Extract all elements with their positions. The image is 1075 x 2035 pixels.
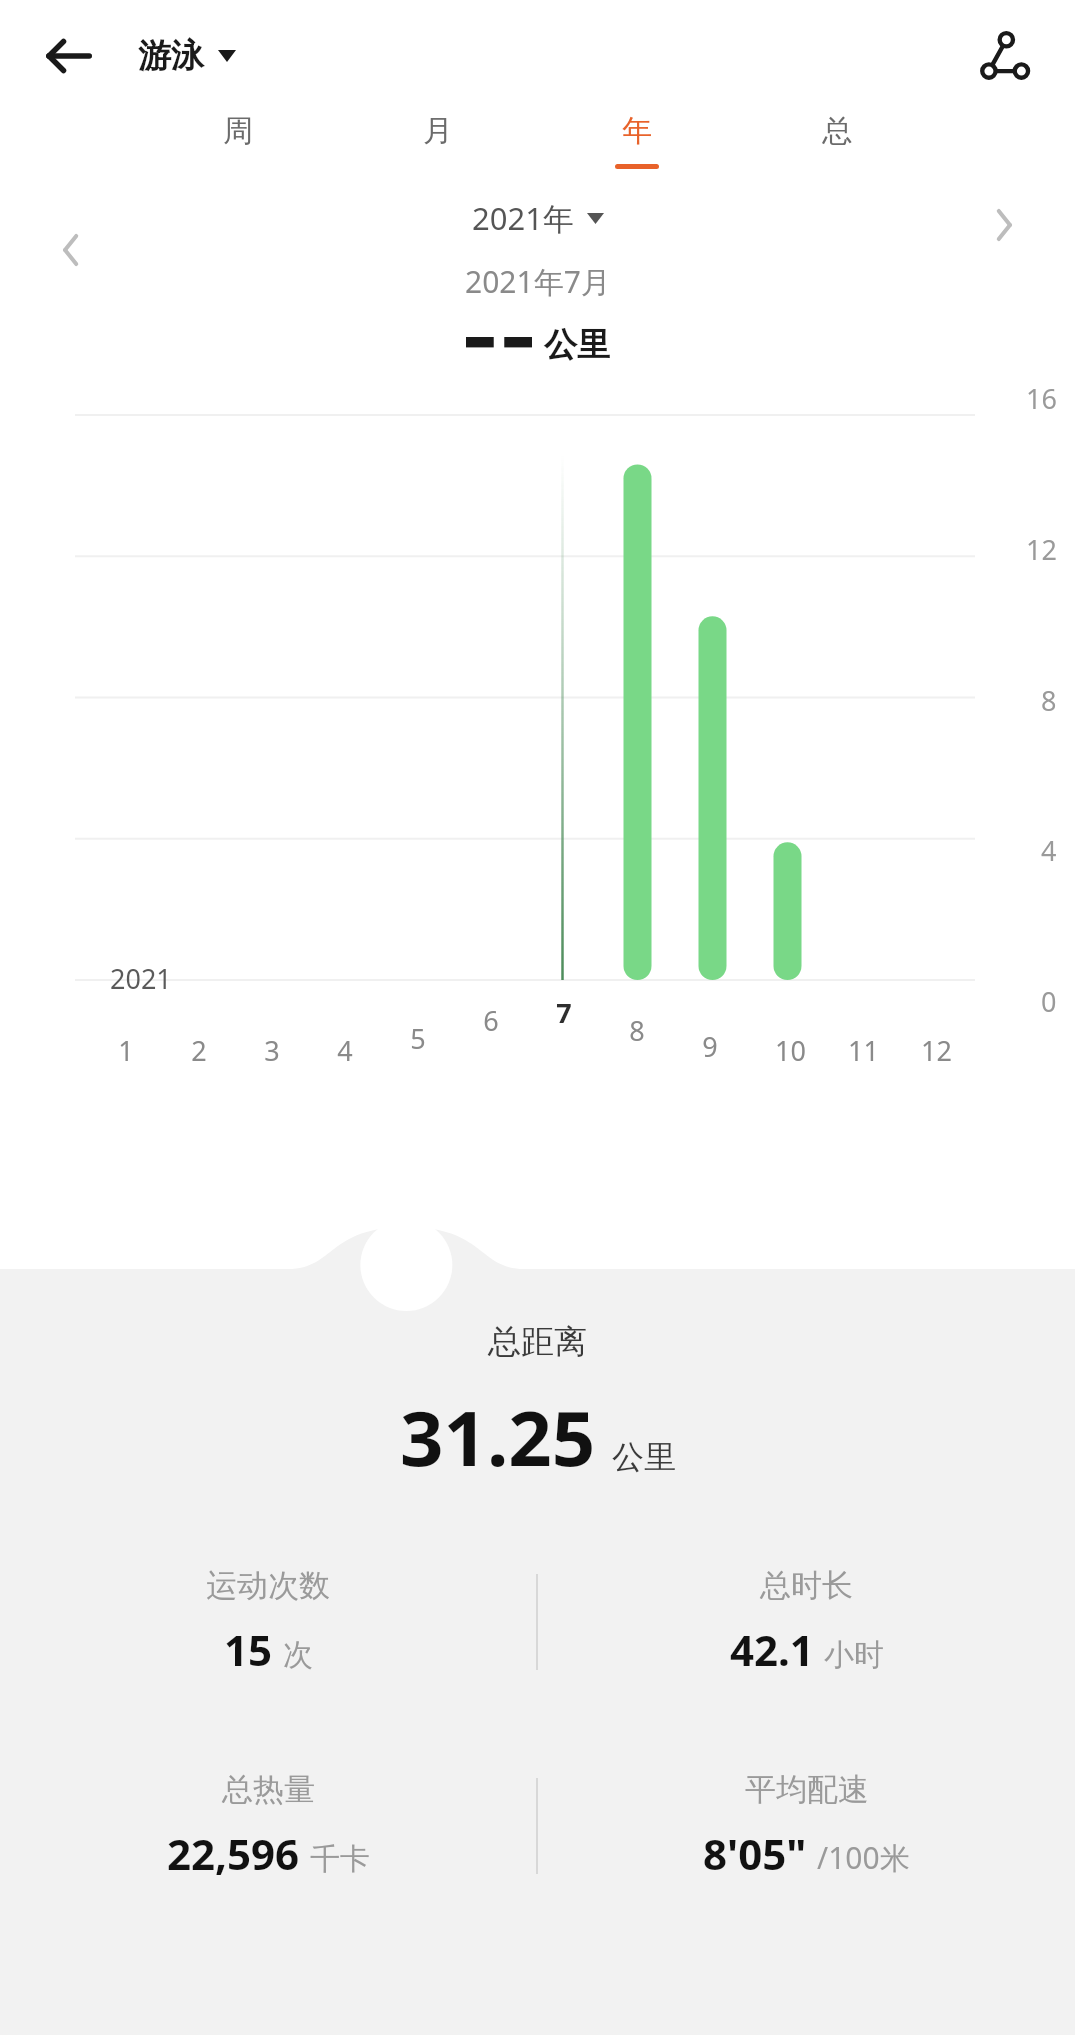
staticText: 31.25 — [400, 1385, 596, 1489]
staticText: 2021年 — [472, 197, 574, 239]
staticText: 运动次数 — [206, 1566, 330, 1605]
staticText: 月 — [423, 112, 453, 150]
staticText: 3 — [264, 1032, 280, 1069]
staticText: 2021 — [110, 960, 172, 997]
staticText: /100米 — [817, 1837, 910, 1878]
staticText: 年 — [622, 112, 652, 150]
staticText: 5 — [410, 1020, 426, 1057]
staticText: 9 — [702, 1028, 718, 1065]
button[interactable]: 运动次数 — [0, 1566, 536, 1678]
staticText: 游泳 — [138, 35, 204, 77]
staticText: 公里 — [544, 324, 610, 366]
staticText: 12 — [1026, 531, 1057, 568]
staticText: 10 — [775, 1032, 806, 1069]
staticText: 42.1 — [730, 1621, 814, 1678]
staticText: 4 — [1041, 832, 1057, 869]
staticText: 22,596 — [167, 1825, 300, 1882]
button[interactable]: Share — [975, 27, 1033, 85]
staticText: 总距离 — [488, 1321, 587, 1363]
button[interactable]: Previous year — [44, 224, 96, 276]
staticText: 1 — [118, 1032, 134, 1069]
staticText: 7 — [556, 994, 572, 1031]
staticText: 6 — [483, 1002, 499, 1039]
button[interactable]: 周 — [210, 112, 266, 169]
staticText: 8 — [629, 1012, 645, 1049]
staticText: 15 — [224, 1621, 273, 1678]
staticText: 8'05" — [703, 1825, 807, 1882]
staticText: 0 — [1041, 983, 1057, 1020]
button[interactable]: 平均配速 — [538, 1770, 1075, 1882]
staticText: 2 — [191, 1032, 207, 1069]
button[interactable]: 月 — [410, 112, 466, 169]
button[interactable]: Next year — [979, 199, 1031, 251]
staticText: 周 — [223, 112, 253, 150]
staticText: 次 — [283, 1636, 313, 1674]
staticText: 2021年7月 — [465, 261, 611, 302]
staticText: 总时长 — [760, 1566, 853, 1605]
staticText: 8 — [1041, 682, 1057, 719]
staticText: 小时 — [824, 1636, 884, 1674]
button[interactable]: 年 — [609, 112, 665, 169]
staticText: 公里 — [612, 1437, 676, 1477]
button[interactable]: 总时长 — [538, 1566, 1075, 1678]
staticText: 12 — [921, 1032, 952, 1069]
staticText: 4 — [337, 1032, 353, 1069]
staticText: 16 — [1026, 380, 1057, 417]
staticText: 千卡 — [310, 1840, 370, 1878]
button[interactable]: 2021年 — [472, 197, 604, 239]
staticText: 平均配速 — [745, 1770, 869, 1809]
staticText: 总 — [822, 112, 852, 150]
button[interactable]: 总 — [809, 112, 865, 169]
staticText: 11 — [848, 1032, 879, 1069]
button[interactable]: Back — [40, 28, 96, 84]
staticText: 总热量 — [222, 1770, 315, 1809]
button[interactable]: 总热量 — [0, 1770, 536, 1882]
button[interactable]: 游泳 — [138, 35, 236, 77]
